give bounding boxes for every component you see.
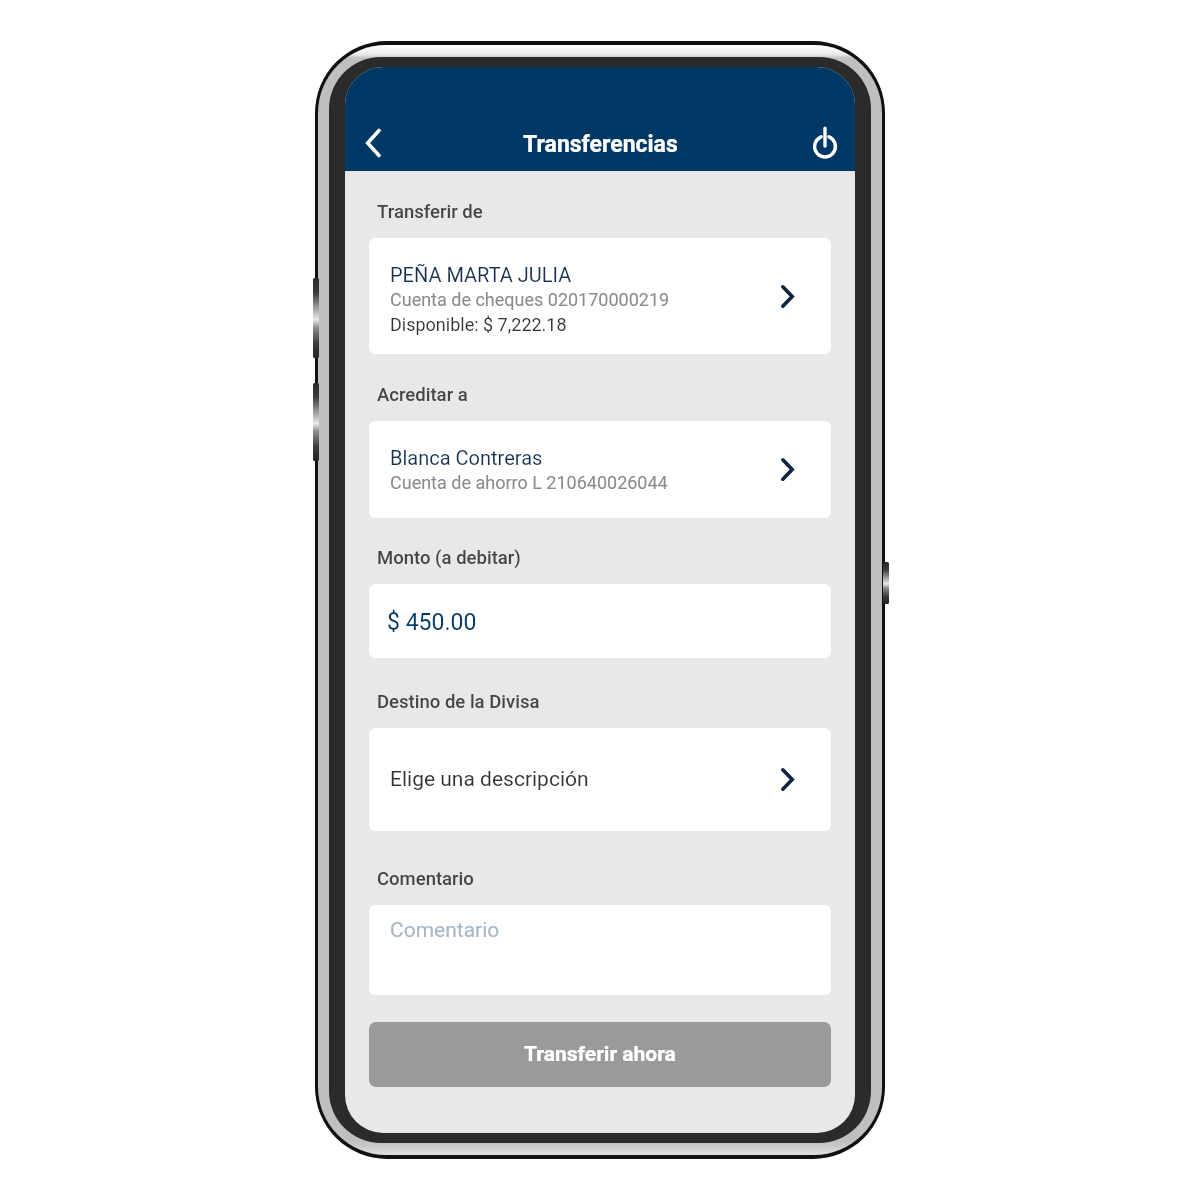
staticText: Comentario xyxy=(390,918,500,943)
button[interactable]: $ 450.00 xyxy=(369,584,831,658)
staticText: PEÑA MARTA JULIA xyxy=(390,263,572,286)
staticText: $ 450.00 xyxy=(387,609,477,636)
staticText: Transferir de xyxy=(377,201,483,223)
button[interactable]: Power xyxy=(798,116,852,170)
button[interactable]: Transferir ahora xyxy=(369,1022,831,1087)
button[interactable]: Blanca Contreras xyxy=(369,421,831,518)
staticText: Monto (a debitar) xyxy=(377,547,521,569)
staticText: Cuenta de cheques 020170000219 xyxy=(390,289,670,310)
staticText: Transferir ahora xyxy=(524,1042,676,1067)
button[interactable]: PEÑA MARTA JULIA xyxy=(369,238,831,354)
button[interactable]: Comentario xyxy=(369,905,831,995)
button[interactable]: Elige una descripción xyxy=(369,728,831,831)
staticText: Elige una descripción xyxy=(390,767,589,792)
staticText: Cuenta de ahorro L 210640026044 xyxy=(390,472,668,493)
staticText: Comentario xyxy=(377,868,474,890)
staticText: Destino de la Divisa xyxy=(377,691,540,713)
staticText: Disponible: $ 7,222.18 xyxy=(390,314,567,335)
staticText: Transferencias xyxy=(523,131,678,158)
staticText: Blanca Contreras xyxy=(390,446,543,469)
staticText: Acreditar a xyxy=(377,384,468,406)
button[interactable]: Back xyxy=(346,116,400,170)
